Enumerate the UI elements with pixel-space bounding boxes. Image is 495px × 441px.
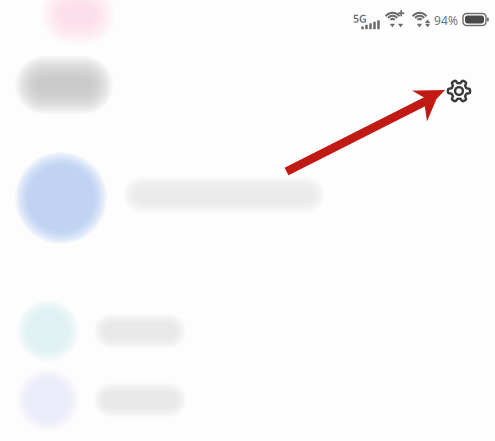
staticText: 5G: [353, 11, 367, 26]
staticText: 94%: [434, 12, 458, 28]
button[interactable]: Menu item: [23, 301, 303, 381]
button[interactable]: Menu item: [23, 370, 303, 441]
button[interactable]: Account: [24, 163, 344, 263]
button[interactable]: Settings: [437, 69, 481, 113]
